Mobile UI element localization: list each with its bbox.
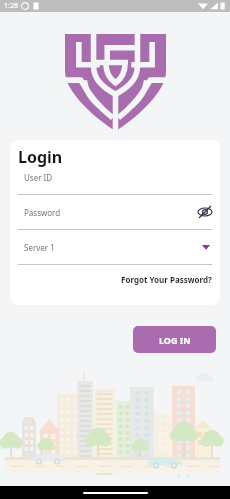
staticText: Password <box>24 207 61 218</box>
button[interactable]: User ID <box>10 160 220 195</box>
button[interactable]: LOG IN <box>133 326 216 353</box>
staticText: Server 1 <box>24 242 55 253</box>
staticText: 1:28 <box>4 1 18 11</box>
other: Show password <box>197 204 213 220</box>
staticText: User ID <box>24 172 53 183</box>
button[interactable]: Server 1 <box>10 230 220 265</box>
button[interactable]: Forgot Your Password? <box>120 271 213 288</box>
staticText: Login <box>18 146 63 168</box>
other: Select server <box>200 241 212 253</box>
button[interactable]: Password <box>10 195 220 230</box>
staticText: LOG IN <box>159 334 191 346</box>
